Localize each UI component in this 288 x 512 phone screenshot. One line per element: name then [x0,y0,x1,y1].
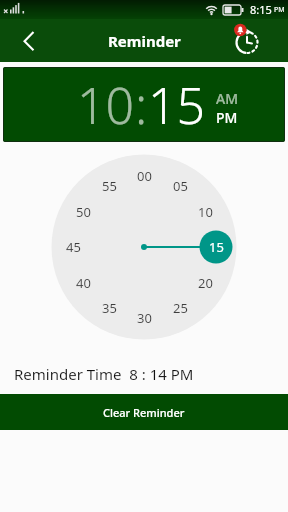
button[interactable]: 50 [76,203,91,221]
button[interactable]: 35 [102,299,117,317]
button[interactable]: Clear Reminder [0,394,288,430]
staticText: Clear Reminder [103,405,185,420]
button[interactable]: 10 [198,203,213,221]
staticText: Reminder Time 8 : 14 PM [14,364,194,384]
button[interactable]: 15 [209,238,224,256]
button[interactable]: PM [216,108,238,127]
button[interactable]: 20 [198,274,213,292]
staticText: 8:15 [250,2,272,17]
button[interactable]: 05 [173,177,188,195]
staticText: Reminder [108,31,181,51]
staticText: 10 [77,71,135,139]
button[interactable] [0,19,43,62]
staticText: : [135,71,148,139]
button[interactable]: 30 [137,309,152,327]
button[interactable]: AM [216,89,239,108]
button[interactable] [228,22,266,60]
button[interactable]: 45 [66,238,81,256]
button[interactable]: 00 [137,167,152,185]
button[interactable]: 55 [102,177,117,195]
button[interactable]: 40 [76,274,91,292]
button[interactable]: 25 [173,299,188,317]
staticText: PM [274,5,285,15]
staticText: 15 [148,71,206,139]
